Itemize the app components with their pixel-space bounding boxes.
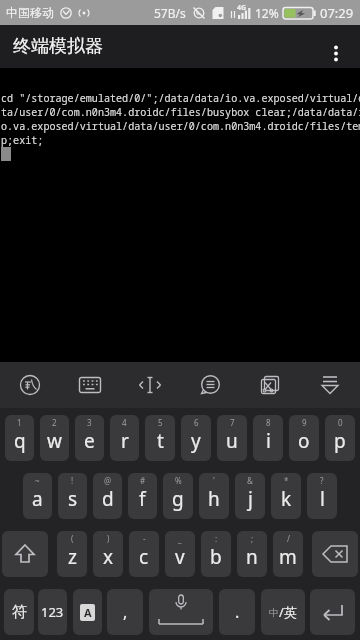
staticText: k [281,486,292,512]
button[interactable]: 5 [145,415,175,461]
button[interactable] [0,362,60,408]
staticText: 终端模拟器 [13,35,103,58]
staticText: r [121,428,129,454]
staticText: x [103,544,114,570]
button[interactable]: ; [237,531,267,577]
staticText: . [235,601,240,623]
staticText: / [279,603,284,621]
button[interactable]: 符 [4,589,34,635]
staticText: y [191,428,201,454]
staticText: 3 [87,417,92,428]
staticText: i [266,428,271,454]
staticText: d [102,486,114,512]
button[interactable]: 1 [5,415,34,461]
button[interactable] [180,362,240,408]
button[interactable]: . [219,589,255,635]
button[interactable] [240,362,300,408]
staticText: - [143,533,146,544]
staticText: 英 [284,604,297,620]
button[interactable]: 2 [40,415,69,461]
button[interactable]: - [129,531,159,577]
button[interactable]: & [235,473,265,519]
button[interactable]: # [128,473,157,519]
button[interactable]: * [271,473,301,519]
button[interactable]: / [273,531,303,577]
staticText: l [320,486,325,512]
button[interactable]: 6 [181,415,211,461]
staticText: 0 [338,417,343,428]
button[interactable]: ! [58,473,87,519]
button[interactable]: : [201,531,231,577]
staticText: o.va.exposed/virtual/data/user/0/com.n0n… [1,119,360,133]
staticText: cd "/storage/emulated/0/";/data/data/io.… [1,91,360,105]
button[interactable]: % [163,473,193,519]
staticText: m [279,544,297,570]
staticText: e [84,428,95,454]
button[interactable]: ) [93,531,123,577]
button[interactable]: ~ [23,473,52,519]
staticText: b [210,544,222,570]
button[interactable] [310,589,355,635]
button[interactable]: , [107,589,143,635]
button[interactable]: 0 [325,415,355,461]
button[interactable]: 8 [253,415,283,461]
button[interactable]: 4 [110,415,139,461]
staticText: 9 [302,417,307,428]
staticText: ? [320,475,324,486]
staticText: 57B/s [154,5,186,21]
staticText: 123 [41,603,64,621]
staticText: @ [104,475,112,486]
staticText: 7 [230,417,235,428]
staticText: 5 [158,417,163,428]
staticText: % [175,475,182,486]
button[interactable]: A [73,589,102,635]
staticText: 2 [52,417,57,428]
staticText: f [139,486,146,512]
staticText: 07:29 [320,4,354,22]
button[interactable]: _ [165,531,195,577]
staticText: 4 [122,417,127,428]
staticText: : [215,533,218,544]
staticText: ' [213,475,215,486]
button[interactable]: ? [307,473,337,519]
staticText: # [140,475,146,486]
button[interactable]: @ [93,473,122,519]
button[interactable]: 7 [217,415,247,461]
staticText: ~ [35,475,40,486]
staticText: g [172,486,184,512]
staticText: 6 [194,417,199,428]
staticText: t [157,428,164,454]
staticText: / [287,533,290,544]
staticText: A [84,605,92,620]
staticText: o [298,428,310,454]
button[interactable] [120,362,180,408]
staticText: ta/user/0/com.n0n3m4.droidc/files/busybo… [1,105,360,119]
button[interactable] [316,27,356,67]
button[interactable]: 中 [261,589,305,635]
button[interactable]: 9 [289,415,319,461]
staticText: a [32,486,43,512]
button[interactable] [2,531,48,577]
button[interactable]: 123 [38,589,67,635]
button[interactable] [312,531,358,577]
button[interactable]: ' [199,473,229,519]
staticText: 1 [17,417,22,428]
staticText: 中 [269,606,279,619]
staticText: p [334,428,346,454]
staticText: h [208,486,220,512]
staticText: * [284,475,289,486]
button[interactable] [300,362,360,408]
staticText: q [14,428,26,454]
staticText: u [226,428,238,454]
staticText: ( [71,533,74,544]
button[interactable] [149,589,213,635]
staticText: 4G [237,3,247,13]
button[interactable]: 3 [75,415,104,461]
staticText: 中国移动 [6,5,54,20]
staticText: s [68,486,78,512]
staticText: 符 [12,603,27,622]
button[interactable] [60,362,120,408]
button[interactable]: ( [57,531,87,577]
staticText: v [175,544,185,570]
staticText: & [247,475,253,486]
